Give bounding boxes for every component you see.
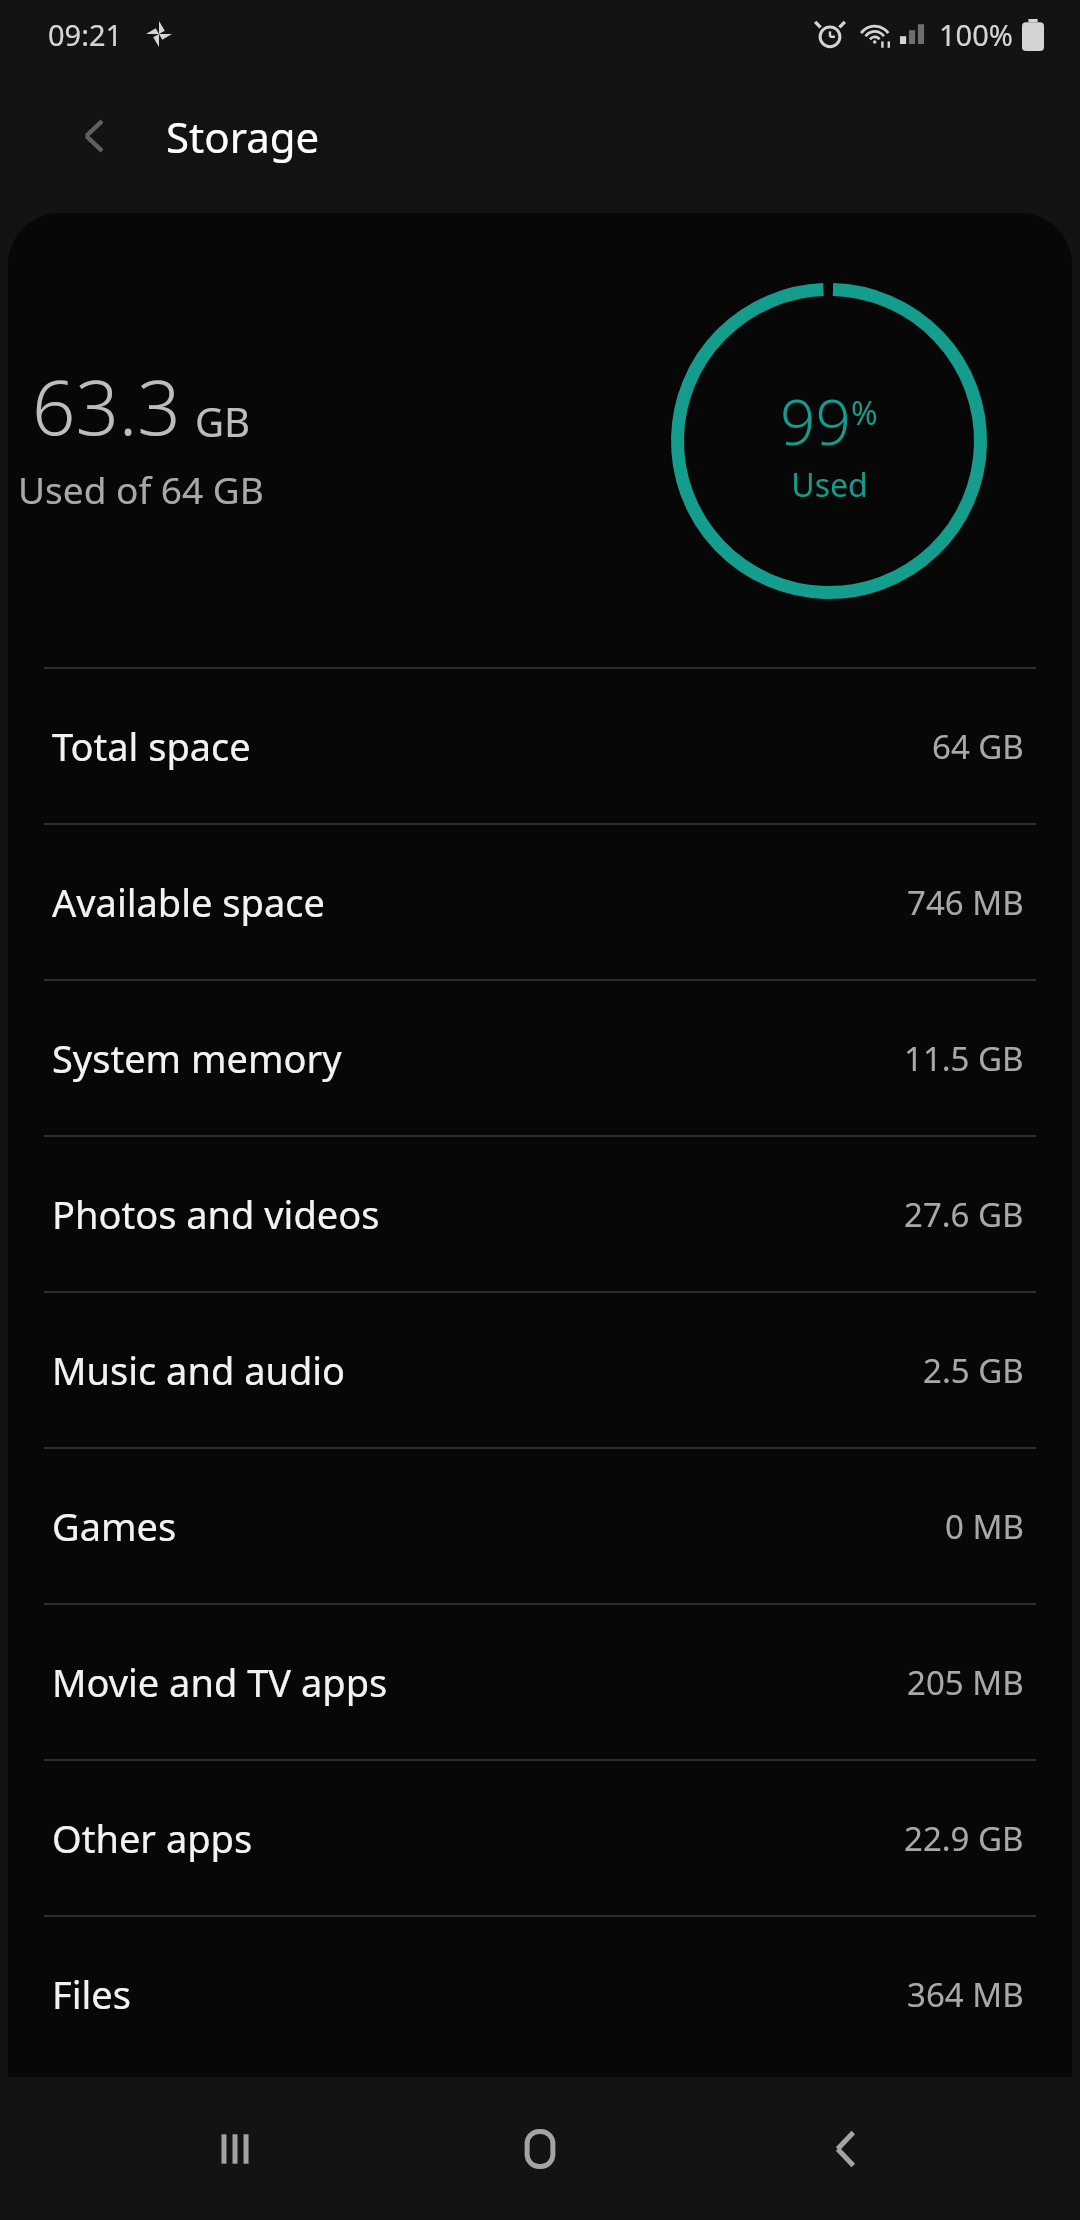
staticText: 64 GB xyxy=(932,724,1024,769)
button[interactable]: Games xyxy=(8,1449,1072,1603)
staticText: 22.9 GB xyxy=(904,1816,1024,1861)
button[interactable]: Other apps xyxy=(8,1761,1072,1915)
staticText: 27.6 GB xyxy=(904,1192,1024,1237)
staticText: 205 MB xyxy=(907,1660,1024,1705)
staticText: 0 MB xyxy=(945,1504,1024,1549)
button[interactable]: Music and audio xyxy=(8,1293,1072,1447)
staticText: 99 xyxy=(780,379,851,463)
button[interactable]: Files xyxy=(8,1917,1072,2071)
staticText: Photos and videos xyxy=(52,1188,380,1240)
button[interactable]: Back xyxy=(42,83,148,189)
staticText: % xyxy=(851,391,878,435)
staticText: Other apps xyxy=(52,1812,253,1864)
staticText: Movie and TV apps xyxy=(52,1656,388,1708)
button[interactable]: Movie and TV apps xyxy=(8,1605,1072,1759)
staticText: 100% xyxy=(939,15,1013,54)
button[interactable]: Back xyxy=(775,2079,915,2219)
staticText: Used of 64 GB xyxy=(18,464,264,514)
button[interactable]: Recents xyxy=(165,2079,305,2219)
staticText: Available space xyxy=(52,876,325,928)
staticText: 63.3 xyxy=(32,354,181,458)
staticText: 746 MB xyxy=(907,880,1024,925)
staticText: Games xyxy=(52,1500,177,1552)
staticText: Used xyxy=(791,463,868,507)
staticText: Music and audio xyxy=(52,1344,346,1396)
staticText: 2.5 GB xyxy=(923,1348,1024,1393)
staticText: GB xyxy=(195,394,251,448)
staticText: 09:21 xyxy=(48,15,123,54)
staticText: System memory xyxy=(52,1032,342,1084)
button[interactable]: Total space xyxy=(8,669,1072,823)
staticText: 364 MB xyxy=(907,1972,1024,2017)
button[interactable]: Available space xyxy=(8,825,1072,979)
staticText: Files xyxy=(52,1968,131,2020)
staticText: Total space xyxy=(52,720,251,772)
button[interactable]: Photos and videos xyxy=(8,1137,1072,1291)
button[interactable]: System memory xyxy=(8,981,1072,1135)
staticText: 11.5 GB xyxy=(904,1036,1024,1081)
staticText: Storage xyxy=(166,108,320,165)
button[interactable]: Home xyxy=(470,2079,610,2219)
